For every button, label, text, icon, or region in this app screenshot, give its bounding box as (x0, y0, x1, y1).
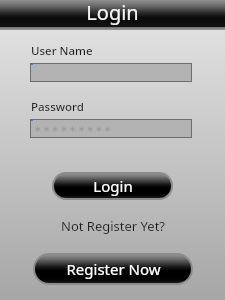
button[interactable]: ∗∗∗∗∗∗∗∗∗ (30, 119, 192, 138)
button[interactable]: Not Register Yet? (0, 217, 225, 235)
button[interactable]: Login (52, 172, 173, 200)
staticText: Login (93, 176, 133, 196)
staticText: User Name (31, 43, 93, 59)
staticText: ∗∗∗∗∗∗∗∗∗ (34, 124, 113, 134)
button[interactable] (30, 63, 192, 82)
staticText: Password (31, 99, 84, 115)
staticText: Login (86, 0, 139, 26)
button[interactable]: Register Now (33, 253, 193, 285)
staticText: Not Register Yet? (61, 217, 165, 235)
staticText: Register Now (66, 259, 161, 279)
